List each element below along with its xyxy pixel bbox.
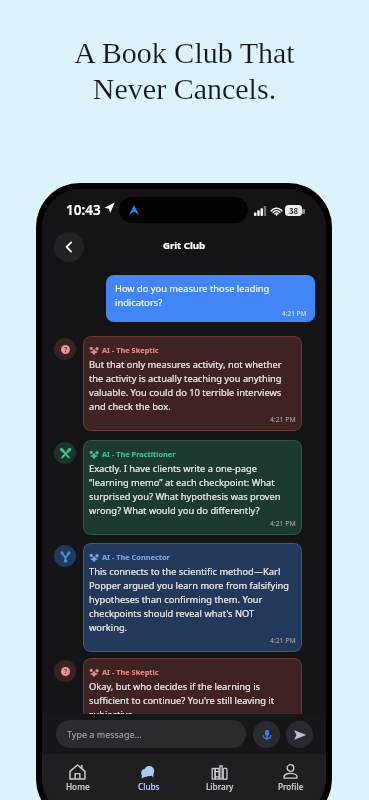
staticText: ? (64, 345, 68, 354)
staticText: 4:21 PM (282, 309, 307, 318)
staticText: How do you measure those leading indicat… (115, 282, 307, 309)
staticText: AI - The Connector (102, 552, 170, 562)
staticText: AI - The Practitioner (102, 449, 176, 459)
button[interactable]: Back (54, 232, 84, 262)
button[interactable]: Send (286, 721, 313, 748)
staticText: 4:21 PM (270, 723, 296, 732)
button[interactable]: Profile (255, 754, 326, 800)
button[interactable]: Type a message... (56, 720, 246, 748)
button[interactable]: AI - The Connector (83, 543, 302, 652)
staticText: Type a message... (67, 728, 142, 740)
staticText: AI - The Skeptic (102, 667, 159, 677)
staticText: Profile (278, 781, 304, 792)
button[interactable]: Home (42, 754, 113, 800)
staticText: But that only measures activity, not whe… (89, 358, 296, 413)
staticText: 4:21 PM (270, 415, 296, 424)
staticText: Library (206, 781, 234, 792)
staticText: Grit Club (163, 239, 206, 252)
staticText: ? (64, 667, 68, 676)
staticText: 38 (289, 205, 299, 216)
staticText: AI - The Skeptic (102, 345, 159, 355)
staticText: 4:21 PM (270, 636, 296, 645)
button[interactable]: Clubs (113, 754, 184, 800)
button[interactable]: AI - The Practitioner (83, 440, 302, 535)
staticText: A Book Club That Never Cancels. (74, 36, 295, 105)
staticText: 10:43 (66, 201, 101, 219)
staticText: Okay, but who decides if the learning is… (89, 680, 296, 721)
button[interactable]: How do you measure those leading indicat… (106, 275, 315, 322)
button[interactable]: AI - The Skeptic (83, 658, 302, 739)
button[interactable]: AI - The Skeptic (83, 336, 302, 431)
button[interactable]: Library (184, 754, 255, 800)
button[interactable]: Voice message (253, 721, 280, 748)
staticText: 4:21 PM (270, 519, 296, 528)
staticText: Exactly. I have clients write a one-page… (89, 462, 296, 517)
staticText: Clubs (138, 781, 160, 792)
staticText: This connects to the scientific method—K… (89, 565, 290, 634)
staticText: Home (66, 781, 90, 792)
